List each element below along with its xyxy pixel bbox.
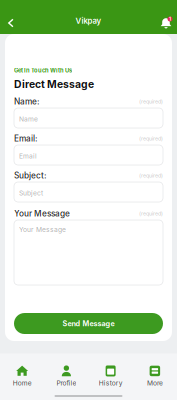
staticText: Direct Message [14, 78, 94, 90]
staticText: (required) [139, 98, 163, 105]
staticText: 1 [169, 16, 171, 22]
button[interactable]: Notifications [157, 8, 177, 34]
staticText: (required) [139, 210, 163, 217]
staticText: Name: [14, 96, 40, 106]
staticText: Profile [56, 379, 76, 387]
staticText: Send Message [62, 319, 114, 328]
staticText: More [147, 379, 163, 387]
button[interactable]: History [88, 365, 133, 387]
staticText: Name [19, 115, 38, 123]
staticText: Get In Touch With Us [14, 67, 72, 74]
staticText: (required) [139, 172, 163, 179]
button[interactable]: Home [0, 365, 44, 387]
staticText: Subject [19, 189, 43, 197]
button[interactable]: Profile [44, 365, 88, 387]
button[interactable]: Send Message [14, 313, 163, 334]
button[interactable]: Back [0, 8, 23, 34]
staticText: History [99, 379, 123, 387]
staticText: Home [13, 379, 32, 387]
staticText: Your Message [19, 225, 66, 234]
staticText: (required) [139, 135, 163, 142]
button[interactable]: More [133, 365, 177, 387]
staticText: Your Message [14, 208, 70, 218]
staticText: Email: [14, 133, 38, 143]
staticText: Email [19, 152, 37, 160]
staticText: Vikpay [75, 16, 101, 26]
staticText: Subject: [14, 170, 47, 180]
